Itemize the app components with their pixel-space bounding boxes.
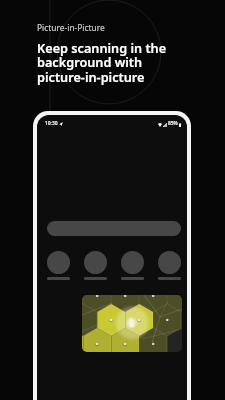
- staticText: 10:30: [45, 120, 58, 127]
- button[interactable]: [47, 251, 70, 274]
- button[interactable]: [84, 251, 107, 274]
- button[interactable]: [158, 251, 181, 274]
- staticText: Picture-in-Picture: [37, 22, 105, 33]
- button[interactable]: Coverage map picture in picture: [82, 295, 182, 352]
- staticText: Keep scanning in the background with pic…: [37, 39, 170, 86]
- staticText: 85%: [168, 120, 178, 127]
- button[interactable]: [47, 221, 181, 236]
- button[interactable]: [121, 251, 144, 274]
